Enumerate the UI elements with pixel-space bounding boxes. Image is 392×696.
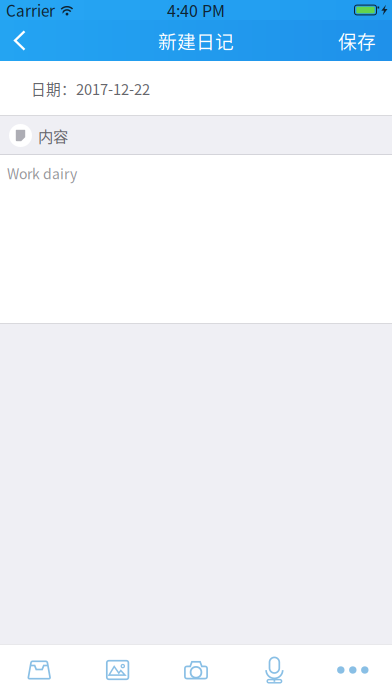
button[interactable]: Record audio <box>235 644 314 696</box>
staticText: Carrier <box>6 0 55 21</box>
button[interactable]: Camera <box>157 644 235 696</box>
button[interactable]: More <box>314 644 392 696</box>
staticText: 新建日记 <box>158 27 234 54</box>
staticText: 4:40 PM <box>167 0 225 22</box>
staticText: 内容 <box>38 124 68 147</box>
button[interactable]: Photo library <box>78 644 157 696</box>
staticText: 保存 <box>338 27 376 54</box>
button[interactable]: 保存 <box>322 20 392 61</box>
staticText: Work dairy <box>7 163 77 183</box>
button[interactable]: Attachments <box>0 644 78 696</box>
button[interactable]: Back <box>0 20 42 61</box>
staticText: 日期：2017-12-22 <box>31 78 150 99</box>
